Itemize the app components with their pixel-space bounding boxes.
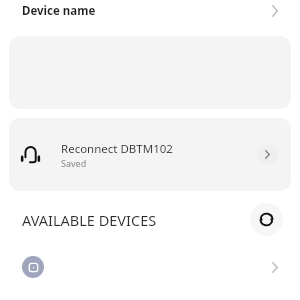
button[interactable]: Available device (0, 245, 300, 289)
button[interactable]: Refresh (250, 203, 283, 236)
button[interactable]: Device details (257, 144, 278, 165)
button[interactable]: Reconnect DBTM102 (9, 118, 291, 191)
staticText: Reconnect DBTM102 (61, 141, 173, 157)
staticText: Saved (61, 157, 87, 169)
button[interactable]: Device name (0, 0, 300, 22)
staticText: AVAILABLE DEVICES (22, 210, 157, 230)
staticText: Device name (22, 3, 96, 19)
